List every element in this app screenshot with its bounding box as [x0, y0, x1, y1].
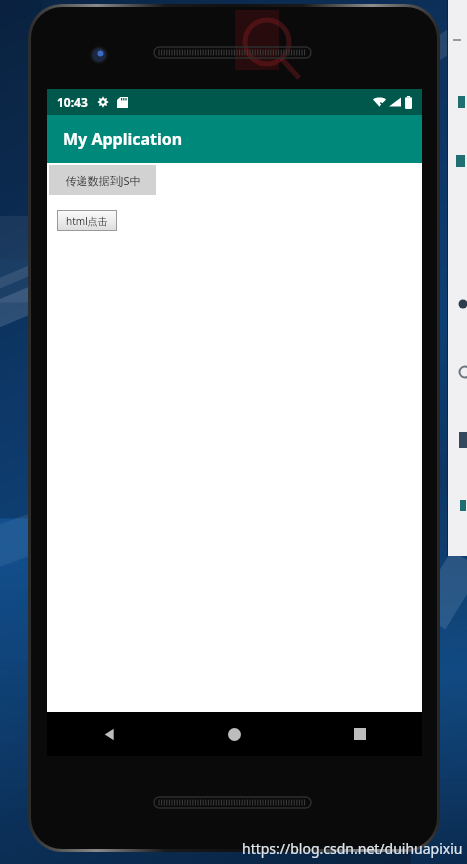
staticText: 10:43	[57, 94, 88, 110]
staticText: html点击	[66, 214, 108, 228]
button[interactable]: My Application	[47, 115, 422, 163]
button[interactable]: Home	[172, 712, 297, 756]
button[interactable]: 传递数据到JS中	[49, 165, 156, 195]
button[interactable]: html点击	[57, 210, 117, 231]
button[interactable]: Back	[47, 712, 172, 756]
staticText: 传递数据到JS中	[65, 173, 141, 188]
staticText: https://blog.csdn.net/duihuapixiu	[242, 839, 463, 858]
staticText: My Application	[63, 128, 183, 150]
button[interactable]: Recents	[297, 712, 422, 756]
